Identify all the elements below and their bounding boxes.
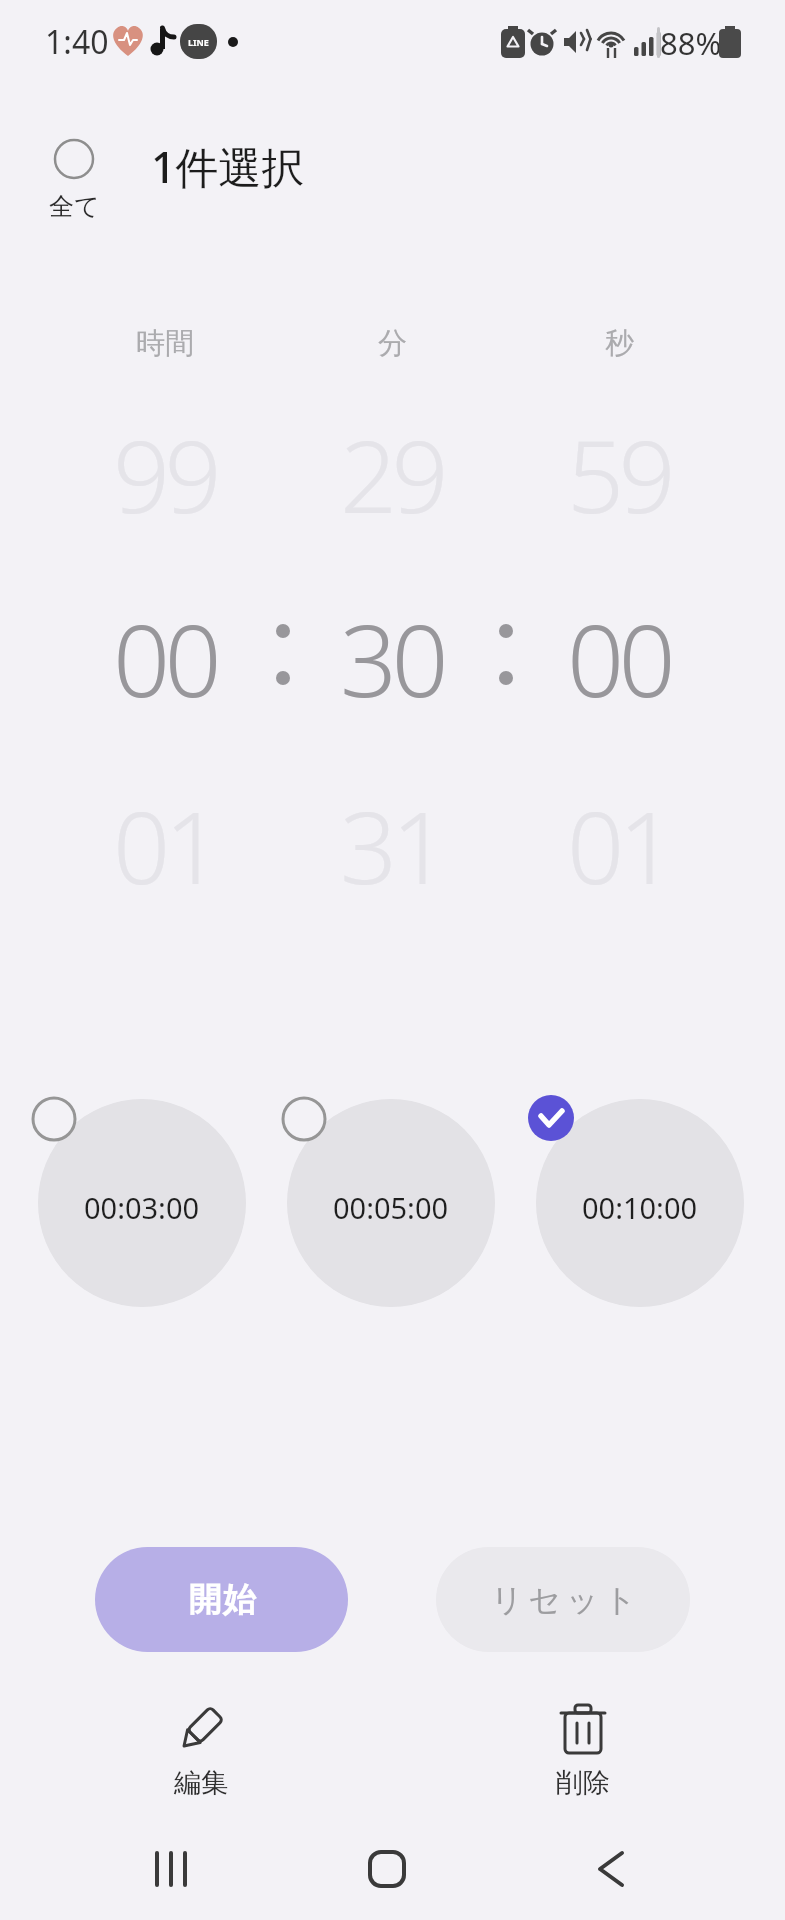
- button[interactable]: 00:10:00: [536, 1099, 744, 1307]
- staticText: 1件選択: [151, 137, 305, 196]
- staticText: 30: [340, 590, 444, 726]
- button[interactable]: リセット: [436, 1547, 690, 1652]
- staticText: 31: [340, 777, 444, 913]
- button[interactable]: [31, 1096, 77, 1142]
- button[interactable]: 全て: [45, 128, 103, 228]
- staticText: 編集: [174, 1766, 228, 1800]
- staticText: 29: [340, 406, 444, 542]
- staticText: 01: [113, 777, 217, 913]
- staticText: 時間: [136, 325, 194, 362]
- button[interactable]: [528, 1095, 574, 1141]
- staticText: リセット: [488, 1580, 639, 1620]
- button[interactable]: [281, 1096, 327, 1142]
- button[interactable]: [121, 1829, 221, 1909]
- button[interactable]: 00:03:00: [38, 1099, 246, 1307]
- staticText: 01: [567, 777, 671, 913]
- staticText: 削除: [556, 1766, 610, 1800]
- staticText: 秒: [605, 325, 634, 362]
- staticText: 99: [113, 406, 217, 542]
- button[interactable]: [337, 1829, 437, 1909]
- staticText: LINE: [188, 36, 209, 48]
- staticText: 00:03:00: [84, 1188, 200, 1227]
- staticText: 00: [113, 590, 217, 726]
- button[interactable]: 削除: [513, 1695, 653, 1805]
- staticText: 88%: [660, 22, 722, 64]
- button[interactable]: 00:05:00: [287, 1099, 495, 1307]
- button[interactable]: 開始: [95, 1547, 348, 1652]
- staticText: 00:05:00: [333, 1188, 449, 1227]
- button[interactable]: 編集: [131, 1695, 271, 1805]
- staticText: 分: [378, 325, 407, 362]
- staticText: 00: [567, 590, 671, 726]
- staticText: 全て: [49, 191, 100, 222]
- staticText: 1:40: [45, 20, 109, 64]
- staticText: 00:10:00: [582, 1188, 698, 1227]
- button[interactable]: [561, 1829, 661, 1909]
- staticText: 開始: [188, 1579, 256, 1621]
- staticText: 59: [567, 406, 671, 542]
